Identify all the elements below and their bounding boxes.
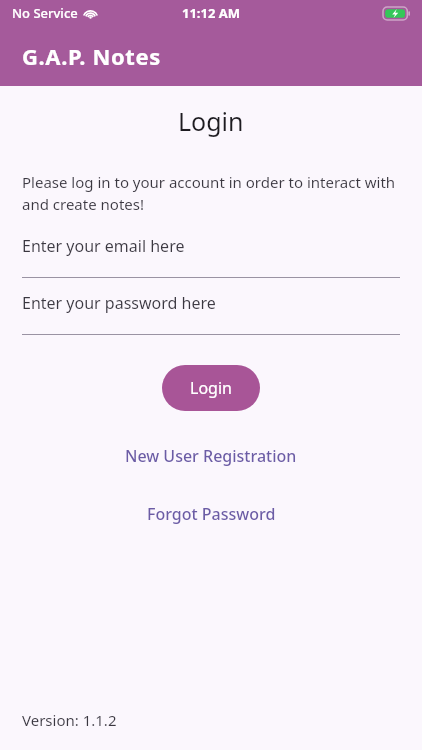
staticText: Forgot Password [147,503,276,525]
staticText: Enter your password here [22,292,216,314]
button[interactable]: Forgot Password [137,497,286,531]
staticText: Login [190,377,232,399]
button[interactable]: Login [162,365,260,411]
button[interactable]: New User Registration [115,439,307,473]
button[interactable]: Enter your password here [22,292,400,314]
staticText: New User Registration [125,445,297,467]
staticText: 11:12 AM [182,4,241,22]
staticText: Enter your email here [22,235,185,257]
staticText: Login [178,104,244,138]
staticText: G.A.P. Notes [22,41,161,71]
button[interactable]: Enter your email here [22,235,400,257]
staticText: No Service [12,4,78,22]
staticText: Please log in to your account in order t… [22,172,400,215]
staticText: Version: 1.1.2 [22,710,117,730]
